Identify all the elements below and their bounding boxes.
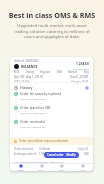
staticText: Cancel order Modify xyxy=(47,153,76,157)
staticText: More xyxy=(80,169,86,171)
staticText: 6 July 22, 10:00:21 am xyxy=(20,125,46,128)
staticText: Charges 20.40 xyxy=(71,80,89,84)
other: Expand history xyxy=(85,86,89,90)
staticText: Total 1,23,000 xyxy=(70,75,89,79)
staticText: 6 July 22, 10:00:15 am xyxy=(20,111,46,114)
staticText: MIS xyxy=(57,70,63,74)
staticText: Market xyxy=(68,70,78,74)
button[interactable]: More xyxy=(73,164,92,171)
staticText: 10:00 am xyxy=(39,147,51,151)
staticText: Buy xyxy=(84,70,89,74)
staticText: Order id 288203402 xyxy=(14,59,39,63)
staticText: Order cancellation request submitted xyxy=(19,139,69,143)
button[interactable]: Cancel order Modify xyxy=(44,152,79,158)
staticText: Exchange order id xyxy=(14,152,37,156)
button[interactable]: Orders xyxy=(11,164,30,171)
staticText: Regular xyxy=(40,70,51,74)
staticText: NSE xyxy=(84,152,89,156)
button[interactable]: Funds xyxy=(52,164,71,171)
staticText: Best in class OMS & RMS xyxy=(0,10,104,20)
button[interactable]: History xyxy=(10,84,93,91)
staticText: Order for quantity is placed xyxy=(20,92,62,96)
staticText: +12.40 (1.2%) xyxy=(73,67,89,70)
staticText: 6 July 22, 10:00:12 am xyxy=(20,97,46,100)
staticText: RELIANCE xyxy=(21,64,38,69)
staticText: Order successful xyxy=(20,120,45,124)
staticText: Watch xyxy=(38,169,45,171)
staticText: NSE xyxy=(14,70,20,74)
staticText: Order placed on XBC xyxy=(20,106,52,110)
staticText: Qty 100 · Avg 1,230.00 xyxy=(14,75,44,79)
staticText: LTP 1,234.50 xyxy=(14,80,30,84)
staticText: Orders xyxy=(17,169,25,171)
staticText: Funds xyxy=(58,169,65,171)
staticText: History xyxy=(20,85,33,90)
staticText: Tap to know more about your order status xyxy=(14,160,64,163)
staticText: 6 July 22 xyxy=(78,147,89,151)
button[interactable]: Watch xyxy=(32,164,51,171)
staticText: Order placed at xyxy=(14,147,33,151)
staticText: 1,234.50 xyxy=(76,62,89,66)
staticText: Upgraded multi-market multi-asset tradin… xyxy=(13,23,91,39)
staticText: Equity xyxy=(26,70,35,74)
staticText: 1100000024 xyxy=(39,152,54,156)
